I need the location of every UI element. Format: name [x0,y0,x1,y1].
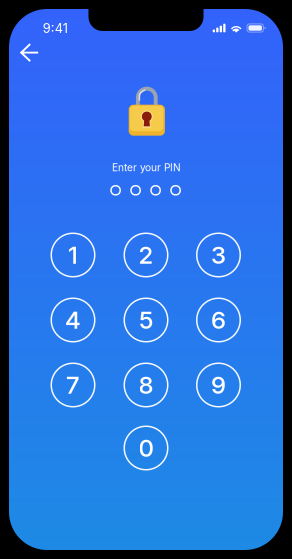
button[interactable]: 4 [51,298,95,342]
staticText: 7 [66,370,80,399]
button[interactable]: 0 [124,426,168,470]
button[interactable]: 2 [124,233,168,277]
staticText: 0 [138,433,153,462]
button[interactable]: 7 [51,363,95,407]
staticText: 5 [139,305,153,334]
staticText: 9:41 [43,21,68,36]
staticText: 8 [138,370,153,399]
staticText: 6 [211,305,226,334]
staticText: 4 [65,305,81,334]
button[interactable]: 6 [197,298,240,342]
button[interactable]: 8 [124,363,168,407]
button[interactable]: 1 [51,233,95,277]
button[interactable]: 3 [197,233,240,277]
staticText: 9 [211,370,226,399]
staticText: 2 [138,240,153,269]
button[interactable]: Back [11,34,48,71]
staticText: 1 [68,240,78,269]
staticText: 3 [211,240,226,269]
button[interactable]: 9 [197,363,240,407]
staticText: Enter your PIN [112,161,181,174]
button[interactable]: 5 [124,298,168,342]
